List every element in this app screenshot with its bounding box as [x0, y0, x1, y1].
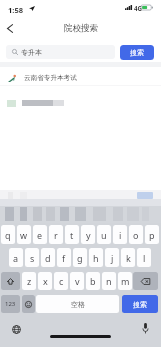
staticText: t	[70, 229, 74, 241]
staticText: k	[126, 252, 131, 264]
staticText: 云南省专升本考试	[24, 74, 77, 82]
button[interactable]: o	[129, 225, 143, 244]
button[interactable]: 搜索	[122, 295, 158, 313]
staticText: 搜索	[133, 300, 147, 309]
staticText: o	[133, 229, 139, 241]
staticText: 专升本	[21, 48, 42, 57]
button[interactable]: Backspace	[133, 272, 158, 290]
button[interactable]: w	[17, 225, 31, 244]
staticText: 4G	[134, 4, 143, 12]
button[interactable]: j	[105, 248, 119, 267]
staticText: h	[93, 252, 99, 264]
button[interactable]: b	[86, 272, 100, 290]
staticText: i	[119, 229, 122, 241]
button[interactable]: h	[89, 248, 103, 267]
button[interactable]: 123	[1, 295, 20, 313]
button[interactable]: k	[121, 248, 135, 267]
staticText: n	[106, 275, 112, 287]
button[interactable]: x	[38, 272, 52, 290]
button[interactable]: s	[25, 248, 39, 267]
button[interactable]: Emoji	[22, 295, 35, 313]
button[interactable]: q	[1, 225, 15, 244]
staticText: q	[5, 229, 11, 241]
button[interactable]: p	[145, 225, 159, 244]
button[interactable]: g	[73, 248, 87, 267]
staticText: 院校搜索	[64, 23, 98, 34]
staticText: a	[13, 252, 19, 264]
button[interactable]: 云南省专升本考试	[0, 67, 161, 89]
button[interactable]: t	[65, 225, 79, 244]
button[interactable]: l	[137, 248, 151, 267]
staticText: s	[30, 252, 35, 264]
staticText: 1:58	[8, 5, 24, 15]
button[interactable]: u	[97, 225, 111, 244]
button[interactable]: y	[81, 225, 95, 244]
button[interactable]: d	[41, 248, 55, 267]
button[interactable]: Shift	[1, 272, 20, 290]
staticText: p	[149, 229, 155, 241]
staticText: d	[45, 252, 51, 264]
button[interactable]: v	[70, 272, 84, 290]
button[interactable]: 专升本	[6, 45, 115, 59]
staticText: w	[20, 229, 28, 241]
button[interactable]: 搜索	[120, 45, 154, 60]
button[interactable]: i	[113, 225, 127, 244]
staticText: c	[59, 275, 64, 287]
staticText: l	[143, 252, 146, 264]
button[interactable]: f	[57, 248, 71, 267]
staticText: z	[27, 275, 32, 287]
staticText: 空格	[71, 300, 85, 309]
button[interactable]: Switch language	[8, 321, 24, 337]
staticText: x	[43, 275, 48, 287]
button[interactable]: z	[22, 272, 36, 290]
staticText: 搜索	[130, 48, 144, 57]
staticText: m	[121, 275, 130, 287]
button[interactable]: Voice input	[137, 320, 153, 336]
staticText: 123	[5, 300, 16, 308]
button[interactable]: a	[9, 248, 23, 267]
staticText: b	[90, 275, 96, 287]
staticText: y	[86, 229, 91, 241]
staticText: j	[111, 252, 114, 264]
staticText: r	[54, 229, 58, 241]
button[interactable]: 空格	[36, 295, 119, 313]
staticText: v	[75, 275, 80, 287]
staticText: u	[101, 229, 107, 241]
button[interactable]: c	[54, 272, 68, 290]
button[interactable]: Back	[2, 17, 18, 39]
staticText: e	[37, 229, 43, 241]
button[interactable]: e	[33, 225, 47, 244]
button[interactable]: m	[118, 272, 132, 290]
staticText: f	[62, 252, 66, 264]
button[interactable]: n	[102, 272, 116, 290]
button[interactable]: r	[49, 225, 63, 244]
staticText: g	[77, 252, 83, 264]
